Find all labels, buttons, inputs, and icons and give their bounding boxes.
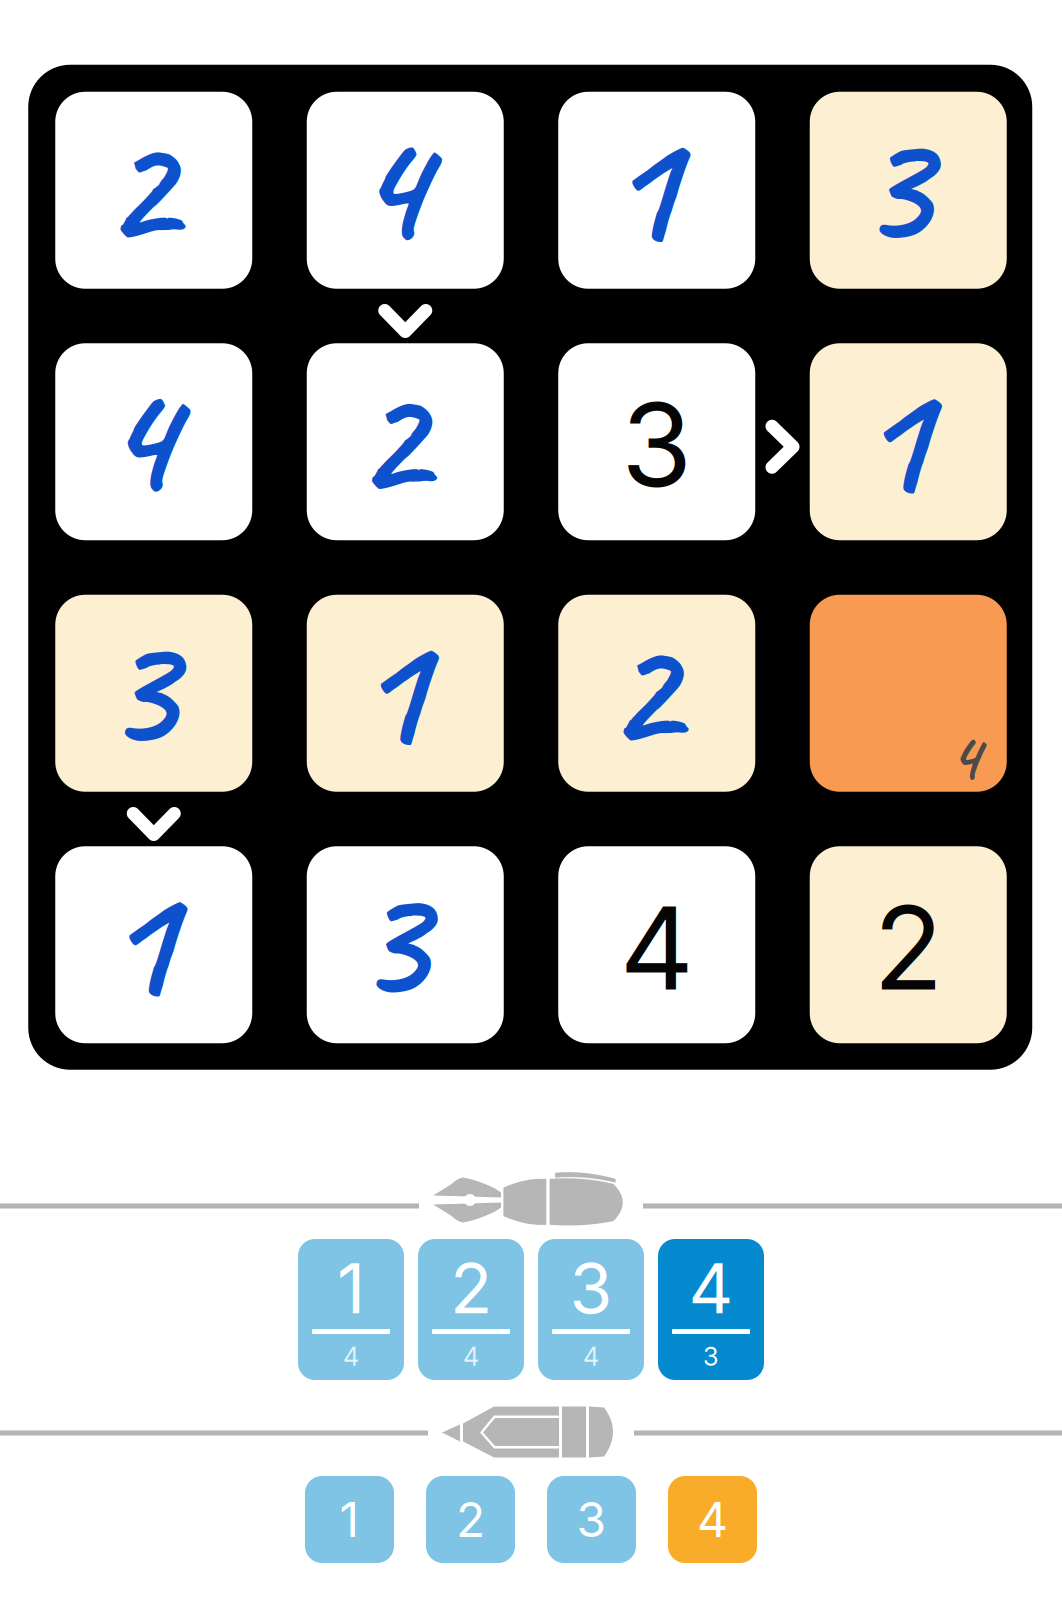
- staticText: 3: [101, 586, 174, 791]
- button[interactable]: 1: [307, 595, 504, 792]
- staticText: 3: [856, 83, 929, 288]
- staticText: 1: [101, 837, 174, 1042]
- staticText: 1: [339, 1490, 359, 1549]
- staticText: 2: [873, 878, 943, 1017]
- button[interactable]: 2: [307, 343, 504, 540]
- button[interactable]: 2: [558, 595, 755, 792]
- button[interactable]: 3: [547, 1476, 636, 1563]
- button[interactable]: 2: [418, 1239, 524, 1380]
- button[interactable]: 2: [426, 1476, 515, 1563]
- staticText: 1: [604, 83, 677, 288]
- button[interactable]: 4: [810, 595, 1007, 792]
- staticText: 4: [101, 334, 174, 539]
- button[interactable]: 1: [305, 1476, 394, 1563]
- button[interactable]: 4: [307, 92, 504, 289]
- staticText: 3: [576, 1490, 606, 1549]
- staticText: 4: [353, 83, 426, 288]
- staticText: 1: [353, 586, 426, 791]
- staticText: 2: [101, 83, 174, 288]
- button[interactable]: 3: [810, 92, 1007, 289]
- staticText: 2: [604, 586, 677, 791]
- staticText: 3: [353, 837, 426, 1042]
- button[interactable]: 1: [298, 1239, 404, 1380]
- staticText: 4: [583, 1341, 599, 1372]
- staticText: 4: [620, 878, 694, 1017]
- staticText: 1: [337, 1246, 365, 1330]
- staticText: 4: [697, 1490, 728, 1549]
- staticText: 4: [949, 712, 980, 800]
- button[interactable]: 1: [810, 343, 1007, 540]
- staticText: 2: [456, 1490, 485, 1549]
- button[interactable]: 3: [55, 595, 252, 792]
- button[interactable]: 3: [558, 343, 755, 540]
- button[interactable]: 4: [55, 343, 252, 540]
- button[interactable]: 2: [55, 92, 252, 289]
- button[interactable]: 4: [658, 1239, 764, 1380]
- staticText: 3: [569, 1246, 612, 1330]
- button[interactable]: 2: [810, 846, 1007, 1043]
- staticText: 4: [688, 1246, 733, 1330]
- staticText: 2: [353, 334, 426, 539]
- staticText: 4: [343, 1341, 359, 1372]
- button[interactable]: 3: [538, 1239, 644, 1380]
- button[interactable]: 3: [307, 846, 504, 1043]
- button[interactable]: 4: [558, 846, 755, 1043]
- button[interactable]: 1: [558, 92, 755, 289]
- staticText: 4: [463, 1341, 479, 1372]
- staticText: 1: [856, 334, 929, 539]
- staticText: 2: [450, 1246, 492, 1330]
- staticText: 3: [703, 1341, 719, 1372]
- button[interactable]: 4: [668, 1476, 757, 1563]
- staticText: 3: [621, 375, 692, 514]
- button[interactable]: 1: [55, 846, 252, 1043]
